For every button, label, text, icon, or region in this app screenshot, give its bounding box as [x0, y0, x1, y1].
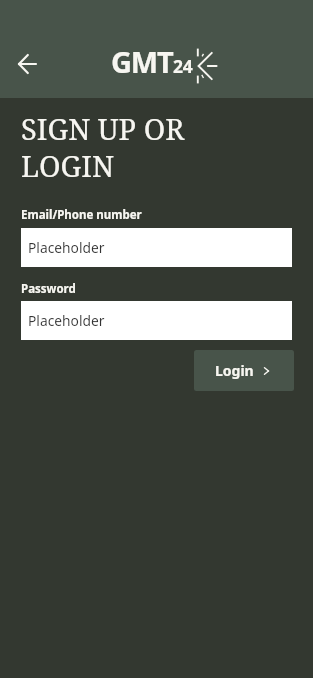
button[interactable]: Back: [4, 41, 49, 86]
staticText: Password: [21, 281, 76, 297]
button[interactable]: Placeholder: [21, 301, 292, 340]
staticText: 24: [173, 54, 193, 78]
button[interactable]: Login: [194, 350, 294, 391]
staticText: Login: [215, 361, 254, 380]
staticText: GMT: [111, 42, 173, 81]
staticText: Placeholder: [28, 311, 105, 330]
staticText: Placeholder: [28, 238, 105, 257]
button[interactable]: Placeholder: [21, 228, 292, 267]
staticText: Email/Phone number: [21, 207, 142, 223]
staticText: SIGN UP OR LOGIN: [21, 109, 185, 186]
